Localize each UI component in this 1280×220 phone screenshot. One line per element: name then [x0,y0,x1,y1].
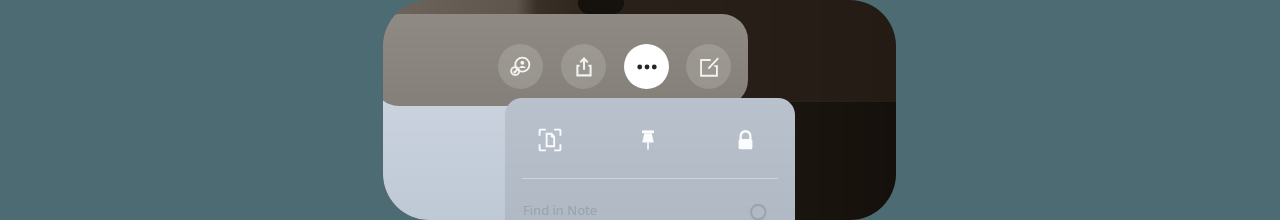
button[interactable]: New note [686,44,731,89]
button[interactable]: Lock note [724,119,766,161]
button[interactable]: Pin note [627,119,669,161]
staticText: Find in Note [523,201,598,219]
button[interactable]: Collaborate [498,44,543,89]
button[interactable]: Find in Note [505,190,795,220]
button[interactable]: Scan document [529,119,571,161]
button[interactable]: Share [561,44,606,89]
button[interactable]: More options [624,44,669,89]
